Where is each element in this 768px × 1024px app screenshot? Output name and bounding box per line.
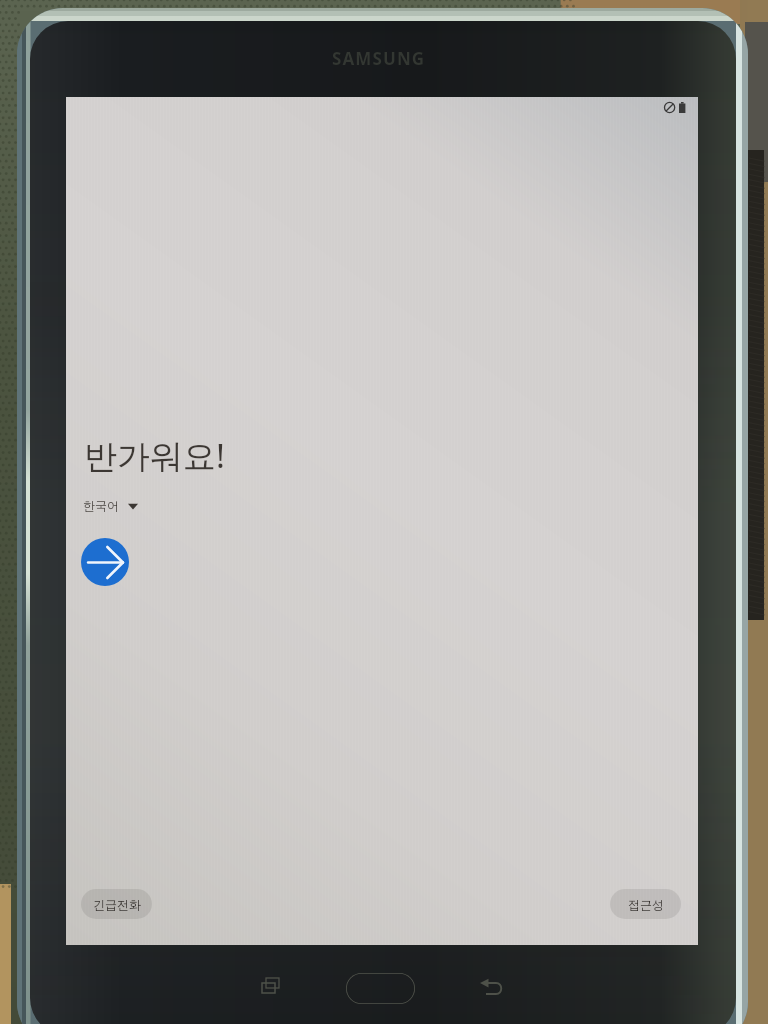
button[interactable]: 접근성 (610, 889, 681, 919)
staticText: 한국어 (83, 498, 119, 513)
button[interactable]: Recents (258, 974, 284, 1000)
staticText: 접근성 (628, 897, 664, 912)
staticText: 반가워요! (84, 433, 225, 478)
button[interactable]: 한국어 (79, 494, 142, 517)
staticText: SAMSUNG (332, 47, 426, 70)
button[interactable]: Home (346, 973, 415, 1004)
button[interactable]: 긴급전화 (81, 889, 152, 919)
button[interactable]: Back (478, 977, 506, 1005)
button[interactable]: Next (81, 538, 129, 586)
staticText: 긴급전화 (93, 897, 141, 912)
